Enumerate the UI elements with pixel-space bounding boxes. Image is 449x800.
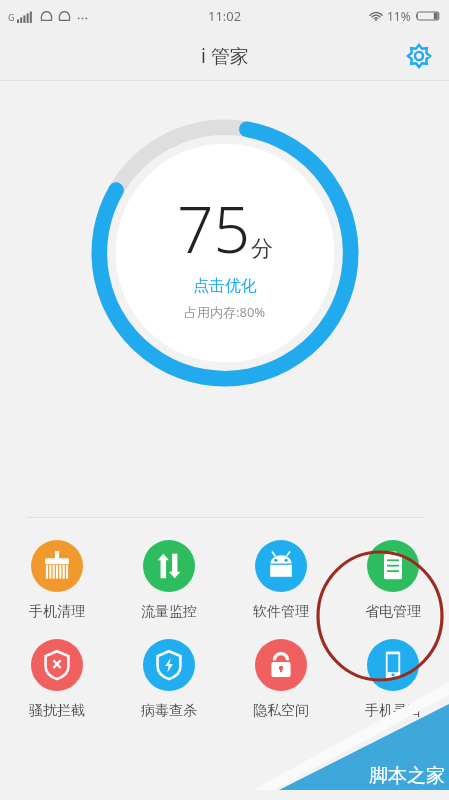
button[interactable]: 流量监控	[113, 540, 225, 621]
button[interactable]: 手机寻回	[337, 639, 449, 720]
staticText: 脚本之家	[369, 764, 445, 788]
staticText: 隐私空间	[253, 702, 309, 720]
staticText: 占用内存:80%	[184, 303, 266, 321]
staticText: 省电管理	[365, 603, 421, 621]
staticText: 流量监控	[141, 603, 197, 621]
staticText: 骚扰拦截	[29, 702, 85, 720]
staticText: 分	[251, 235, 273, 263]
staticText: 软件管理	[253, 603, 309, 621]
staticText: 手机寻回	[365, 702, 421, 720]
staticText: 11%	[387, 8, 411, 24]
button[interactable]: 病毒查杀	[113, 639, 225, 720]
staticText: 病毒查杀	[141, 702, 197, 720]
button[interactable]: 隐私空间	[225, 639, 337, 720]
staticText: 11:02	[208, 7, 242, 25]
staticText: 点击优化	[193, 276, 257, 296]
staticText: i 管家	[201, 43, 249, 69]
button[interactable]: 手机清理	[0, 540, 113, 621]
button[interactable]: 骚扰拦截	[0, 639, 113, 720]
button[interactable]: 75	[75, 103, 375, 403]
staticText: 75	[177, 185, 251, 272]
button[interactable]: Settings	[399, 36, 439, 76]
staticText: G	[8, 11, 15, 23]
button[interactable]: 软件管理	[225, 540, 337, 621]
staticText: 手机清理	[29, 603, 85, 621]
button[interactable]: 省电管理	[337, 540, 449, 621]
